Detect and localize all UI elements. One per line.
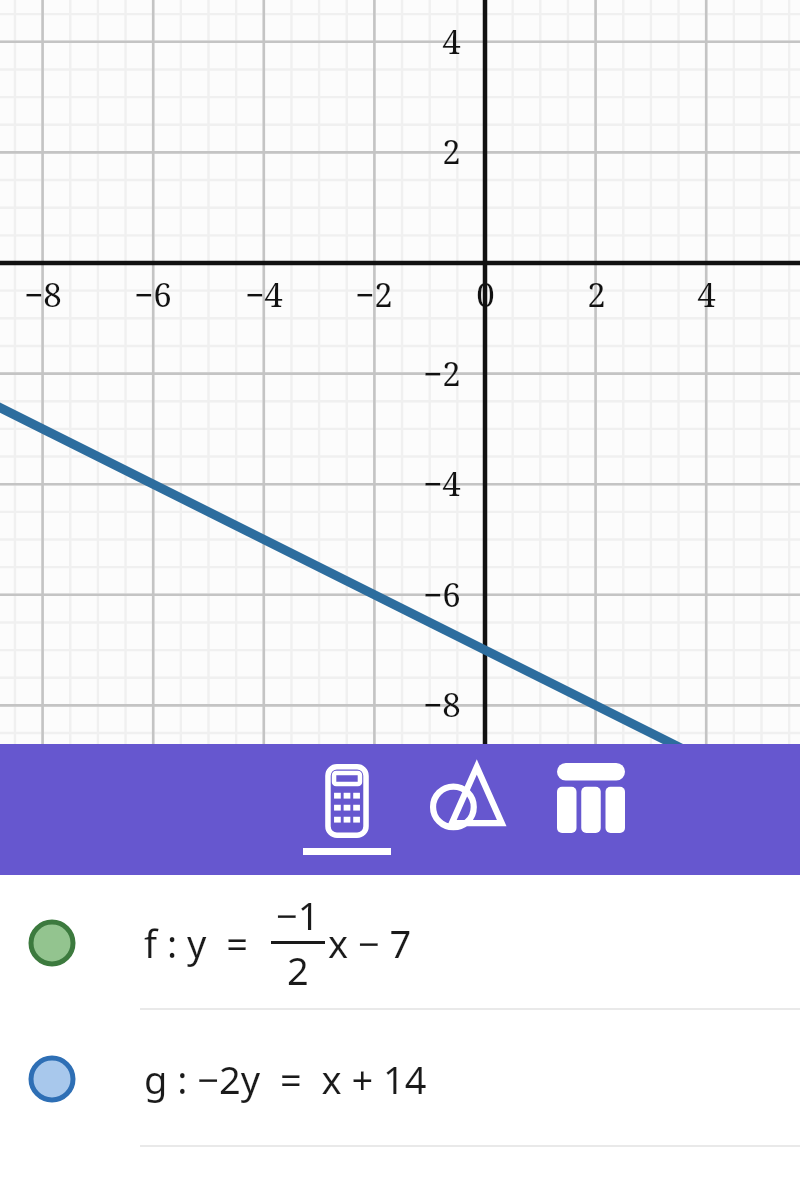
button[interactable]: f : y = [0,875,800,1010]
button[interactable]: g : −2y = x + 14 [0,1010,800,1147]
staticText: −1 [276,889,320,941]
staticText: −4 [245,272,283,317]
staticText: −6 [423,572,461,617]
button[interactable]: Calculator [286,744,408,875]
staticText: 0 [476,272,495,317]
staticText: f : y = [144,917,268,969]
staticText: 4 [697,272,716,317]
staticText: 2 [587,272,606,317]
staticText: −4 [423,461,461,506]
button[interactable]: Table [530,744,652,875]
staticText: 2 [442,129,461,174]
staticText: 2 [287,944,309,996]
staticText: −6 [134,272,172,317]
staticText: 4 [442,19,461,64]
staticText: x − 7 [328,917,412,969]
staticText: −2 [423,351,461,396]
staticText: −2 [355,272,393,317]
staticText: −8 [24,272,62,317]
button[interactable]: Geometry [408,744,530,875]
staticText: −8 [423,682,461,727]
staticText: g : −2y = x + 14 [144,1053,427,1105]
